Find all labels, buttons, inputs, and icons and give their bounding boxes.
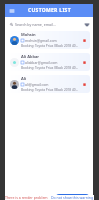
button[interactable]: Ali Akbar [8,53,90,71]
button[interactable]: Delete [81,59,88,66]
staticText: CUSTOMER LIST [28,7,71,14]
button[interactable]: Filter [83,21,90,28]
button[interactable]: Menu [8,7,15,14]
button[interactable]: Delete [81,81,88,88]
button[interactable]: Ali [8,75,90,93]
button[interactable]: Delete [81,37,88,44]
button[interactable]: Mohsin [8,31,90,49]
staticText: ali@gmail.com [25,82,49,87]
staticText: + Add Customer [57,195,88,200]
staticText: Ali [21,76,27,81]
staticText: Ali Akbar [21,54,40,59]
staticText: Mohsin [21,32,36,37]
button[interactable]: Search by name, email... [8,20,80,28]
staticText: aliakbar@gmail.com [25,60,58,65]
staticText: mohsin@gmail.com [25,38,57,43]
staticText: Search by name, email... [15,22,56,27]
staticText: Do not show this warning [51,195,94,200]
staticText: Booking: Toyota Prius (Black 2018 40... [21,88,79,92]
staticText: Booking: Toyota Prius (Black 2018 40... [21,44,79,48]
staticText: There is a render problem [5,195,48,200]
button[interactable]: + Add Customer [56,194,89,200]
staticText: Booking: Toyota Prius (Black 2018 40... [21,66,79,70]
